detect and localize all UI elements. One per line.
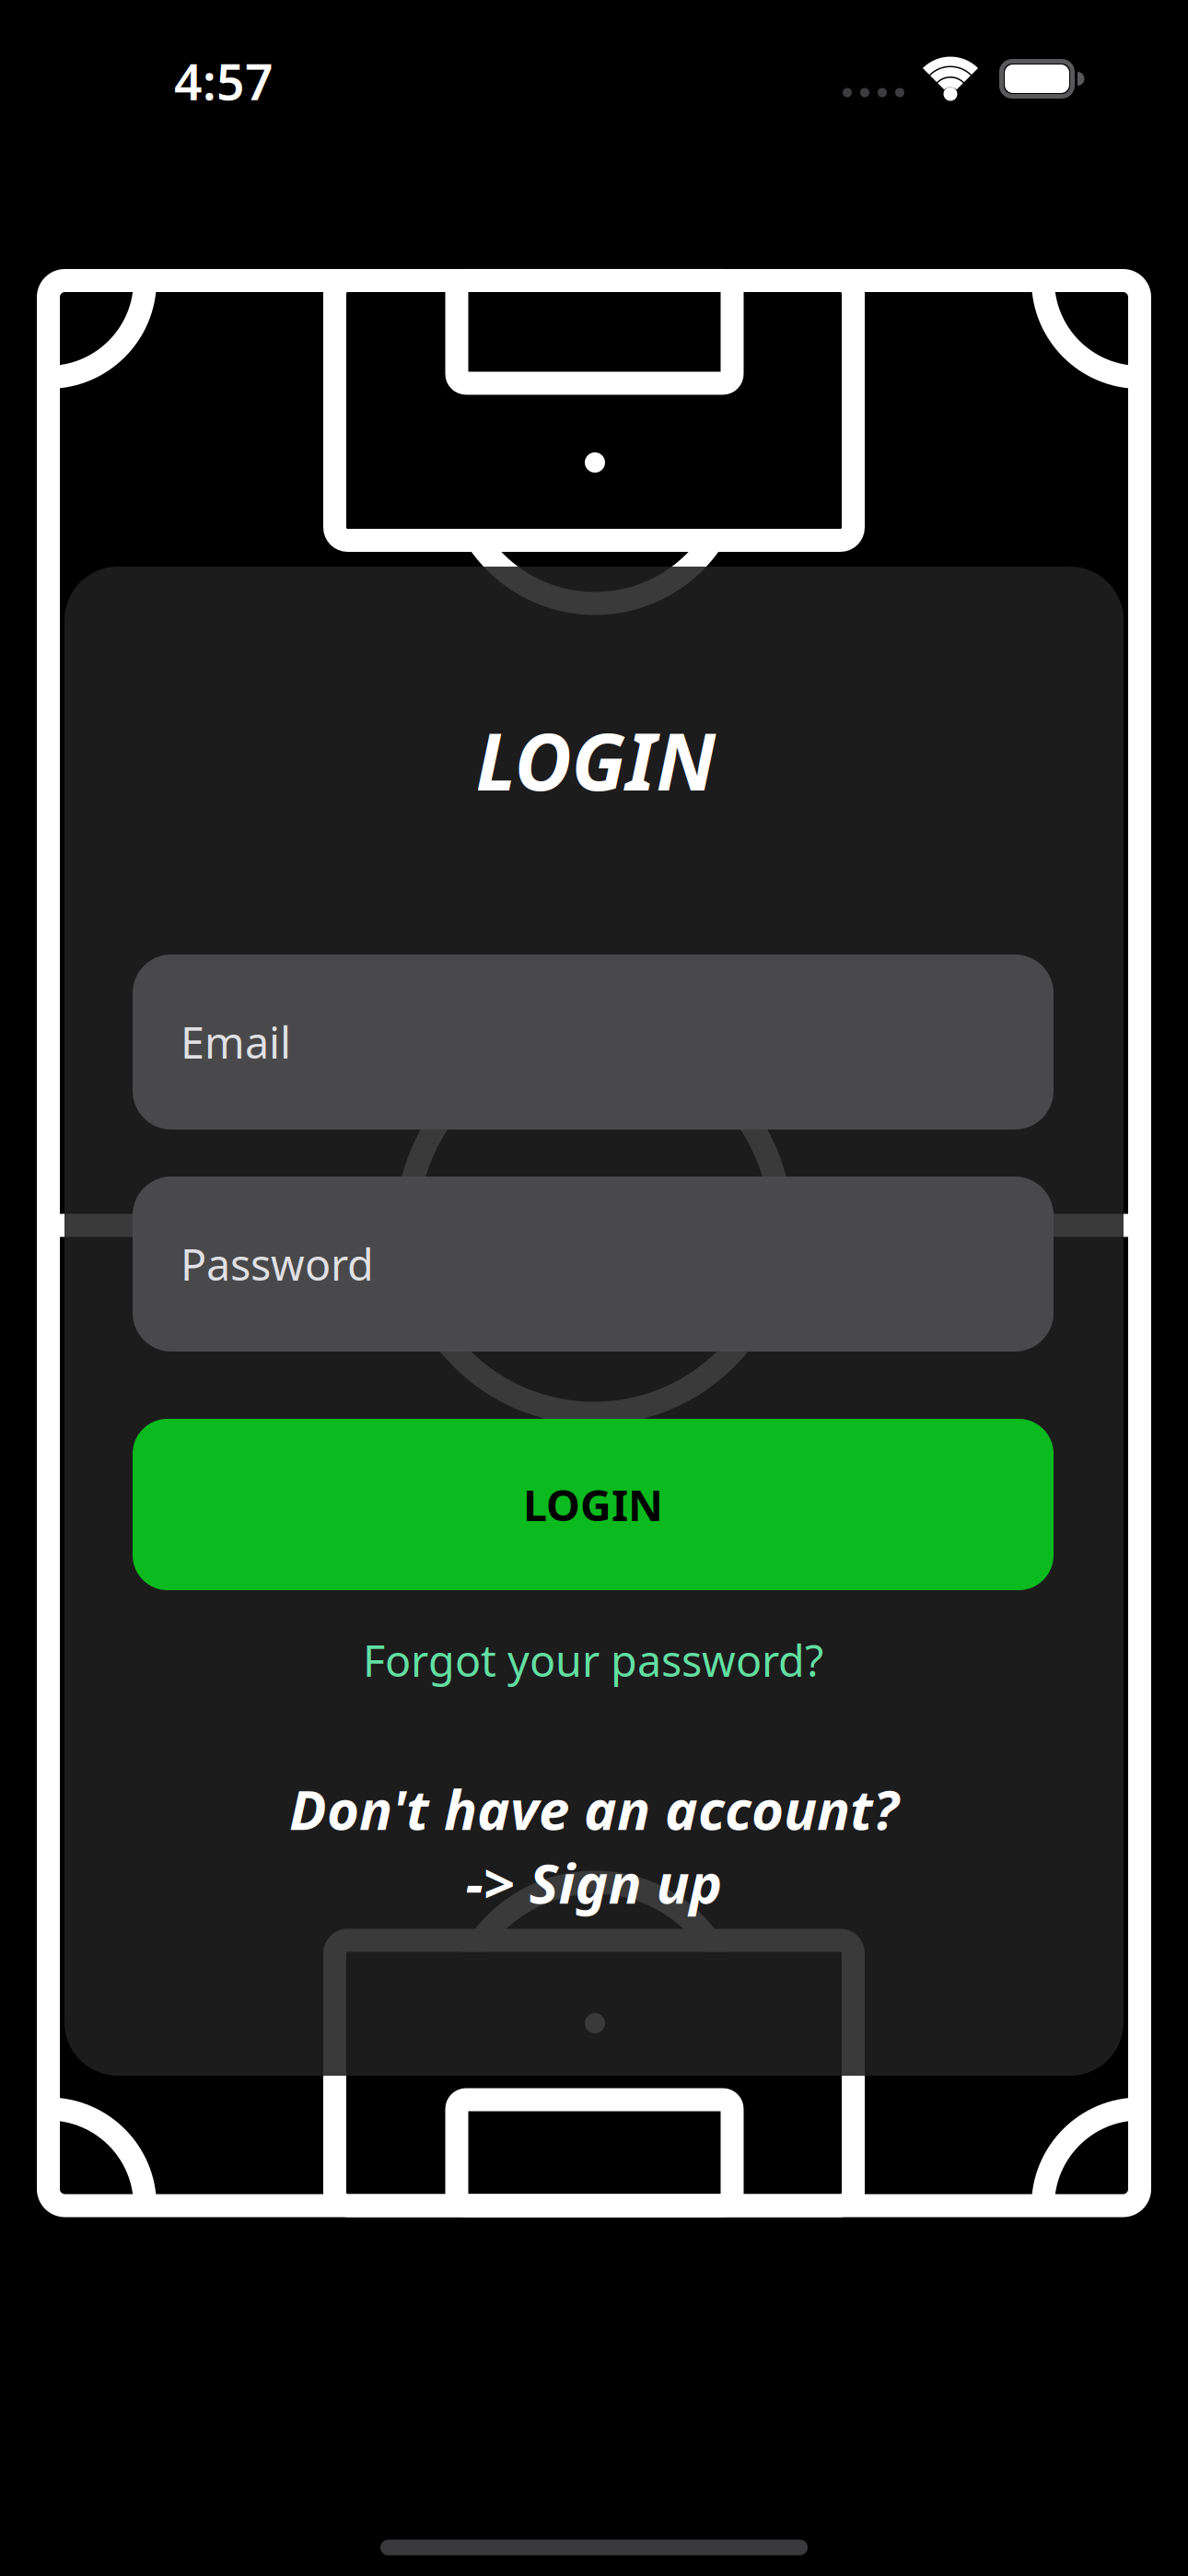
button[interactable]: Forgot your password? bbox=[363, 1632, 823, 1689]
staticText: Don't have an account? bbox=[289, 1772, 899, 1845]
staticText: LOGIN bbox=[476, 708, 716, 812]
staticText: Email bbox=[181, 1013, 291, 1071]
staticText: LOGIN bbox=[523, 1476, 663, 1533]
staticText: Password bbox=[181, 1235, 374, 1293]
staticText: -> Sign up bbox=[466, 1846, 722, 1919]
button[interactable]: Password bbox=[133, 1177, 1054, 1352]
button[interactable]: -> Sign up bbox=[466, 1846, 722, 1919]
staticText: 4:57 bbox=[174, 48, 274, 114]
button[interactable]: LOGIN bbox=[133, 1419, 1054, 1590]
button[interactable]: Email bbox=[133, 954, 1054, 1130]
staticText: Forgot your password? bbox=[363, 1632, 823, 1689]
